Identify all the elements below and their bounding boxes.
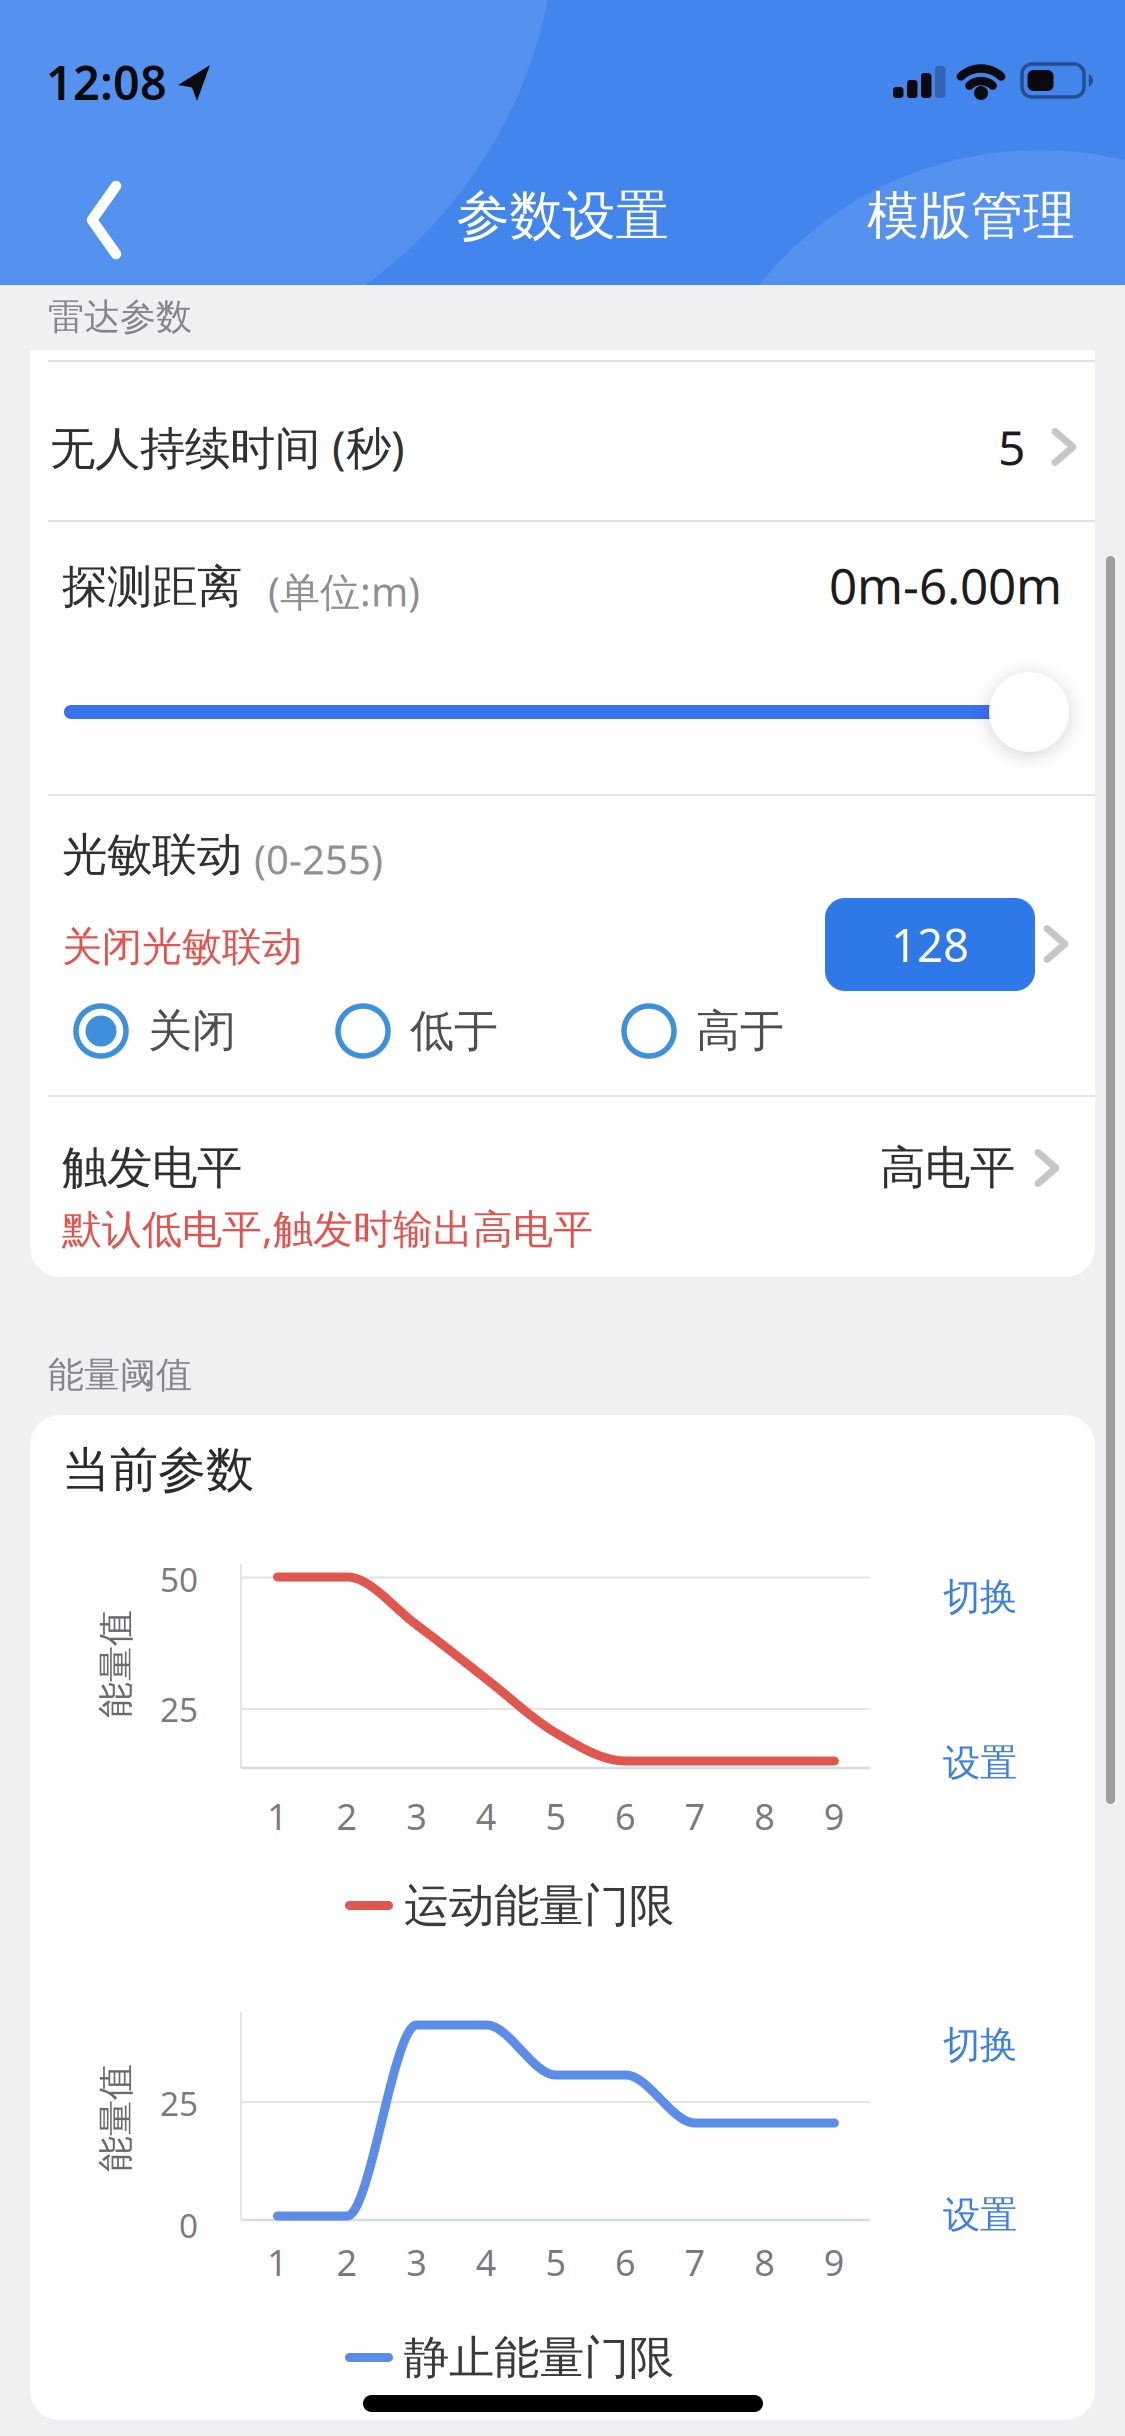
staticText: 5 bbox=[998, 415, 1025, 479]
staticText: 5 bbox=[545, 1792, 566, 1840]
staticText: 能量阈值 bbox=[48, 1353, 192, 1397]
staticText: 1 bbox=[267, 1792, 288, 1840]
staticText: (0-255) bbox=[254, 832, 383, 885]
staticText: 当前参数 bbox=[62, 1440, 254, 1499]
staticText: 7 bbox=[685, 1792, 706, 1840]
button[interactable]: 低于 bbox=[338, 1004, 498, 1058]
staticText: 能量值 bbox=[62, 1642, 170, 1686]
staticText: 静止能量门限 bbox=[404, 2330, 674, 2386]
staticText: 关闭光敏联动 bbox=[62, 922, 302, 971]
staticText: 探测距离 bbox=[62, 559, 242, 615]
staticText: 参数设置 bbox=[456, 183, 668, 249]
staticText: 4 bbox=[476, 2238, 497, 2286]
staticText: 4 bbox=[476, 1792, 497, 1840]
staticText: 6 bbox=[615, 2238, 636, 2286]
button[interactable]: 设置 bbox=[915, 1733, 1045, 1793]
button[interactable]: 模版管理 bbox=[755, 181, 1075, 251]
button[interactable]: 无人持续时间 (秒) bbox=[30, 362, 1095, 520]
staticText: 128 bbox=[891, 914, 969, 975]
staticText: 9 bbox=[824, 2238, 845, 2286]
button[interactable]: 触发电平 bbox=[30, 1096, 1095, 1276]
staticText: 2 bbox=[337, 1792, 358, 1840]
staticText: 模版管理 bbox=[867, 184, 1075, 248]
button[interactable]: 高于 bbox=[624, 1004, 784, 1058]
button[interactable]: 切换 bbox=[915, 2015, 1045, 2075]
staticText: 8 bbox=[754, 1792, 775, 1840]
button[interactable]: 探测距离滑块 bbox=[62, 672, 1069, 752]
staticText: 6 bbox=[615, 1792, 636, 1840]
staticText: 设置 bbox=[943, 2192, 1017, 2238]
staticText: 运动能量门限 bbox=[404, 1878, 674, 1934]
staticText: 50 bbox=[160, 1557, 198, 1601]
staticText: 12:08 bbox=[46, 51, 167, 113]
staticText: 光敏联动 bbox=[62, 827, 242, 883]
staticText: 默认低电平,触发时输出高电平 bbox=[62, 1201, 593, 1254]
staticText: 9 bbox=[824, 1792, 845, 1840]
staticText: 关闭 bbox=[148, 1004, 236, 1058]
staticText: 3 bbox=[406, 1792, 427, 1840]
button[interactable]: 128 bbox=[825, 898, 1035, 991]
staticText: 25 bbox=[160, 2081, 198, 2125]
staticText: 5 bbox=[545, 2238, 566, 2286]
staticText: 2 bbox=[337, 2238, 358, 2286]
staticText: 8 bbox=[754, 2238, 775, 2286]
staticText: 设置 bbox=[943, 1740, 1017, 1786]
staticText: 能量值 bbox=[62, 2096, 170, 2140]
staticText: 3 bbox=[406, 2238, 427, 2286]
staticText: 无人持续时间 (秒) bbox=[50, 417, 405, 477]
staticText: 7 bbox=[685, 2238, 706, 2286]
staticText: 高于 bbox=[696, 1004, 784, 1058]
staticText: 雷达参数 bbox=[48, 295, 192, 339]
staticText: 切换 bbox=[943, 2022, 1017, 2068]
staticText: 高电平 bbox=[880, 1140, 1015, 1196]
staticText: 低于 bbox=[410, 1004, 498, 1058]
staticText: 25 bbox=[160, 1687, 198, 1731]
button[interactable]: 设置 bbox=[915, 2185, 1045, 2245]
staticText: 切换 bbox=[943, 1574, 1017, 1620]
button[interactable]: 切换 bbox=[915, 1567, 1045, 1627]
staticText: 触发电平 bbox=[62, 1140, 242, 1196]
staticText: (单位:m) bbox=[268, 564, 420, 617]
staticText: 0m-6.00m bbox=[829, 552, 1062, 618]
button[interactable]: Back bbox=[83, 180, 143, 260]
staticText: 0 bbox=[179, 2203, 198, 2247]
staticText: 1 bbox=[267, 2238, 288, 2286]
button[interactable]: 关闭 bbox=[76, 1004, 236, 1058]
